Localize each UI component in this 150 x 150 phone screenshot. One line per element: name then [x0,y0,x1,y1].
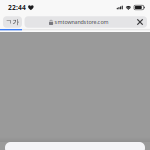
staticText: ㄱ가 [5,18,19,26]
button[interactable]: Stop loading [133,16,147,28]
button[interactable]: Page settings [3,16,22,28]
staticText: smtownandstore.com [54,18,108,26]
staticText: 22:44 [8,3,26,12]
button[interactable]: smtownandstore.com [24,16,133,28]
